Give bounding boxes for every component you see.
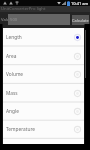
staticText: Length: [6, 34, 73, 41]
staticText: UnitConverterPro light: [1, 6, 46, 12]
button[interactable]: Volume: [3, 65, 84, 83]
button[interactable]: Calculate: [72, 15, 89, 25]
staticText: Temperature: [6, 126, 73, 133]
button[interactable]: Area: [3, 47, 84, 65]
button[interactable]: Temperature: [3, 121, 84, 138]
staticText: Volume: [6, 71, 73, 78]
button[interactable]: Mass: [3, 84, 84, 102]
staticText: Mass: [6, 90, 73, 97]
button[interactable]: Length: [3, 28, 84, 46]
staticText: Angle: [6, 108, 73, 115]
staticText: 500: [10, 17, 18, 23]
staticText: Area: [6, 53, 73, 60]
staticText: Calculate: [72, 18, 89, 23]
staticText: Value: [1, 17, 12, 23]
staticText: 10:41 am: [71, 1, 89, 6]
button[interactable]: Angle: [3, 103, 84, 120]
